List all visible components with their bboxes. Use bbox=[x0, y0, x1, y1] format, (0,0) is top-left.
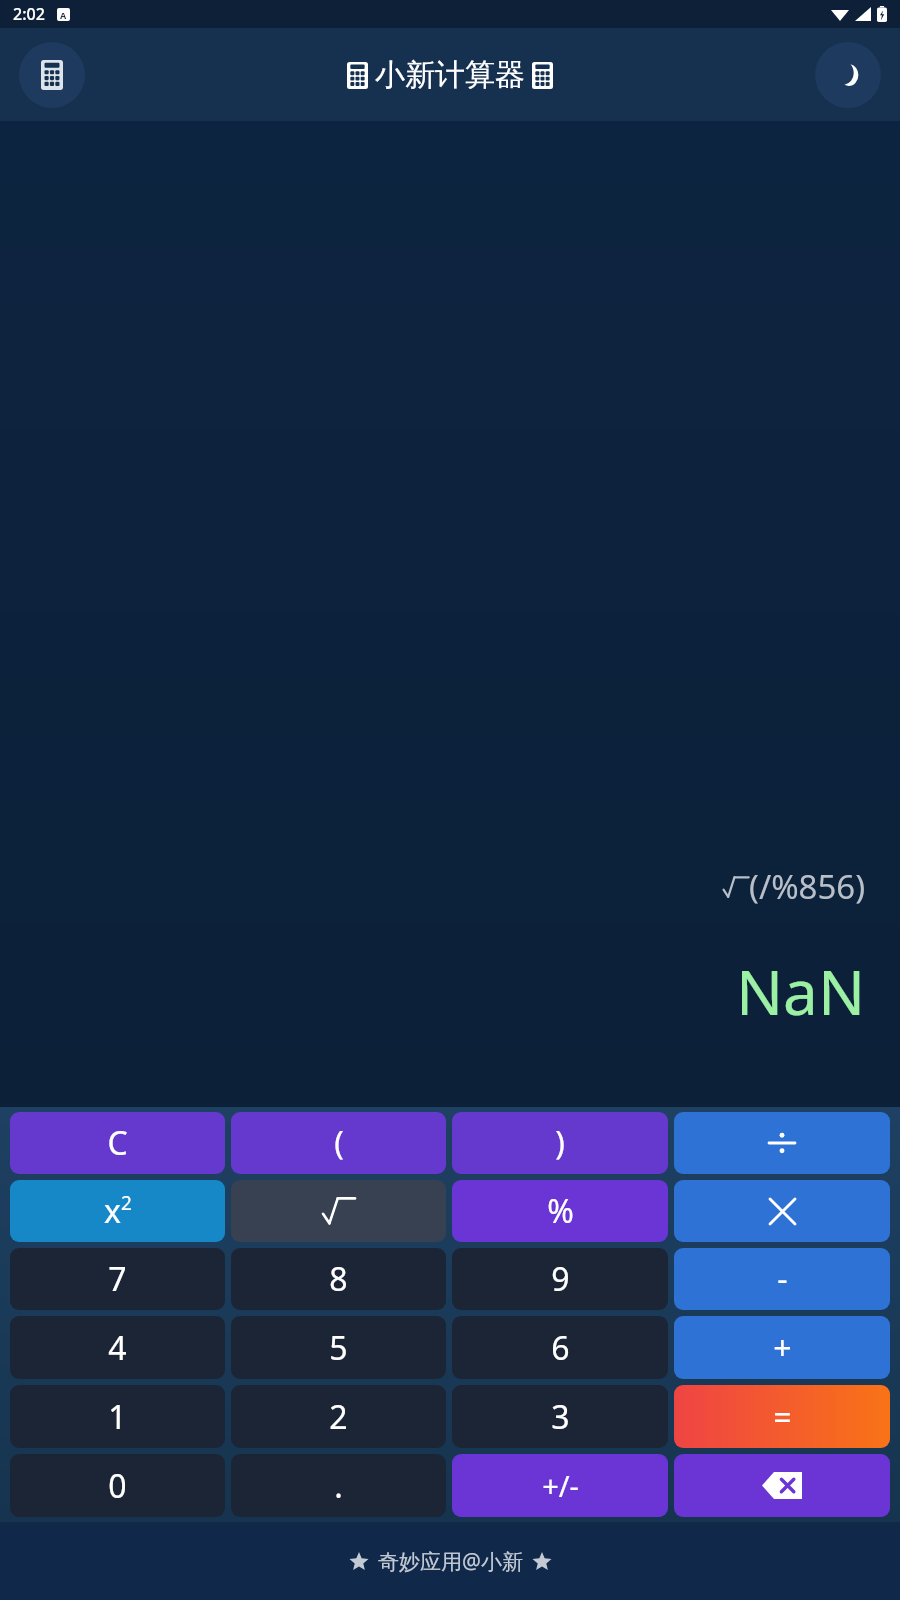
button[interactable]: - bbox=[674, 1248, 890, 1310]
staticText: . bbox=[334, 1464, 343, 1508]
staticText: 3 bbox=[551, 1395, 570, 1439]
button[interactable]: ( bbox=[231, 1112, 446, 1174]
button[interactable]: 1 bbox=[10, 1385, 225, 1448]
staticText: NaN bbox=[736, 949, 866, 1033]
button[interactable]: 2 bbox=[231, 1385, 446, 1448]
button[interactable]: 8 bbox=[231, 1248, 446, 1310]
staticText: - bbox=[777, 1257, 788, 1301]
button[interactable]: 6 bbox=[452, 1316, 668, 1379]
button[interactable]: x bbox=[10, 1180, 225, 1242]
button[interactable]: Calculator bbox=[19, 42, 85, 108]
button[interactable]: Toggle dark mode bbox=[815, 42, 881, 108]
button[interactable]: 5 bbox=[231, 1316, 446, 1379]
button[interactable]: 3 bbox=[452, 1385, 668, 1448]
staticText: 4 bbox=[108, 1326, 127, 1370]
button[interactable]: . bbox=[231, 1454, 446, 1517]
staticText: 8 bbox=[329, 1257, 348, 1301]
staticText: 奇妙应用@小新 bbox=[378, 1547, 523, 1576]
button[interactable]: 7 bbox=[10, 1248, 225, 1310]
staticText: C bbox=[107, 1121, 128, 1165]
staticText: 9 bbox=[551, 1257, 570, 1301]
button[interactable]: % bbox=[452, 1180, 668, 1242]
button[interactable]: +/- bbox=[452, 1454, 668, 1517]
staticText: + bbox=[773, 1326, 792, 1370]
staticText: +/- bbox=[542, 1466, 579, 1505]
staticText: A bbox=[60, 9, 67, 21]
staticText: 0 bbox=[108, 1464, 127, 1508]
staticText: ( bbox=[334, 1121, 344, 1165]
button[interactable]: ) bbox=[452, 1112, 668, 1174]
staticText: 小新计算器 bbox=[375, 56, 525, 94]
staticText: % bbox=[547, 1189, 574, 1233]
button[interactable]: 4 bbox=[10, 1316, 225, 1379]
staticText: x bbox=[104, 1189, 121, 1233]
staticText: = bbox=[773, 1395, 792, 1439]
staticText: 2:02 bbox=[13, 3, 45, 25]
button[interactable] bbox=[231, 1180, 446, 1242]
button[interactable]: = bbox=[674, 1385, 890, 1448]
staticText: 7 bbox=[108, 1257, 127, 1301]
button[interactable] bbox=[674, 1180, 890, 1242]
staticText: 6 bbox=[551, 1326, 570, 1370]
staticText: 1 bbox=[108, 1395, 127, 1439]
staticText: (/%856) bbox=[749, 864, 866, 909]
button[interactable]: + bbox=[674, 1316, 890, 1379]
button[interactable]: C bbox=[10, 1112, 225, 1174]
staticText: 2 bbox=[121, 1190, 132, 1216]
staticText: ) bbox=[555, 1121, 565, 1165]
button[interactable]: 0 bbox=[10, 1454, 225, 1517]
button[interactable]: 9 bbox=[452, 1248, 668, 1310]
staticText: 5 bbox=[329, 1326, 348, 1370]
button[interactable] bbox=[674, 1112, 890, 1174]
button[interactable]: Backspace bbox=[674, 1454, 890, 1517]
staticText: 2 bbox=[329, 1395, 348, 1439]
